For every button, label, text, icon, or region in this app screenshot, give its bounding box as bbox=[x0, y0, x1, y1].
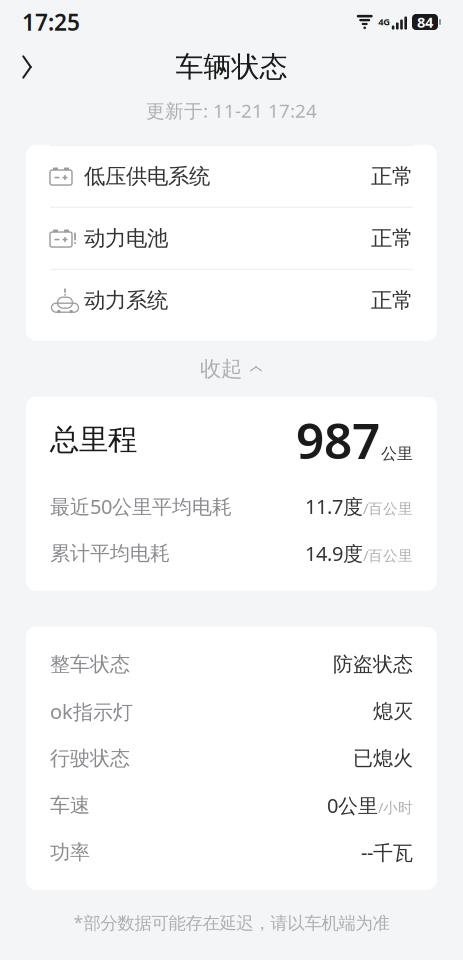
staticText: 累计平均电耗 bbox=[50, 541, 170, 566]
staticText: 正常 bbox=[371, 163, 413, 189]
staticText: 动力电池 bbox=[84, 225, 168, 251]
staticText: 收起 bbox=[200, 356, 242, 382]
staticText: 17:25 bbox=[22, 7, 80, 37]
staticText: 总里程 bbox=[50, 422, 137, 458]
staticText: 车速 bbox=[50, 793, 90, 818]
staticText: 14.9度 bbox=[305, 540, 363, 567]
staticText: 低压供电系统 bbox=[84, 163, 210, 189]
staticText: ok指示灯 bbox=[50, 698, 133, 725]
staticText: 整车状态 bbox=[50, 652, 130, 677]
staticText: --千瓦 bbox=[361, 839, 413, 866]
button[interactable]: 收起 bbox=[0, 341, 463, 397]
staticText: 已熄火 bbox=[353, 746, 413, 771]
staticText: 11.7度 bbox=[305, 493, 363, 520]
staticText: 987 bbox=[296, 407, 380, 472]
staticText: 84 bbox=[417, 12, 433, 32]
staticText: 0公里 bbox=[327, 792, 378, 819]
staticText: /小时 bbox=[378, 798, 413, 817]
staticText: 车辆状态 bbox=[175, 50, 287, 84]
staticText: 正常 bbox=[371, 287, 413, 313]
staticText: 行驶状态 bbox=[50, 746, 130, 771]
staticText: 公里 bbox=[381, 444, 413, 463]
staticText: 正常 bbox=[371, 225, 413, 251]
staticText: 更新于: 11-21 17:24 bbox=[146, 98, 317, 123]
button[interactable]: 低压供电系统 bbox=[26, 146, 437, 207]
staticText: 最近50公里平均电耗 bbox=[50, 493, 232, 520]
staticText: 动力系统 bbox=[84, 287, 168, 313]
button[interactable]: 动力系统 bbox=[26, 269, 437, 331]
staticText: 4G bbox=[378, 15, 390, 28]
staticText: 防盗状态 bbox=[333, 652, 413, 677]
staticText: 功率 bbox=[50, 840, 90, 865]
button[interactable]: 返回 bbox=[0, 45, 54, 89]
staticText: *部分数据可能存在延迟，请以车机端为准 bbox=[73, 911, 389, 934]
staticText: /百公里 bbox=[363, 499, 413, 518]
staticText: 熄灭 bbox=[373, 699, 413, 724]
staticText: /百公里 bbox=[363, 546, 413, 565]
button[interactable]: 动力电池 bbox=[26, 207, 437, 269]
